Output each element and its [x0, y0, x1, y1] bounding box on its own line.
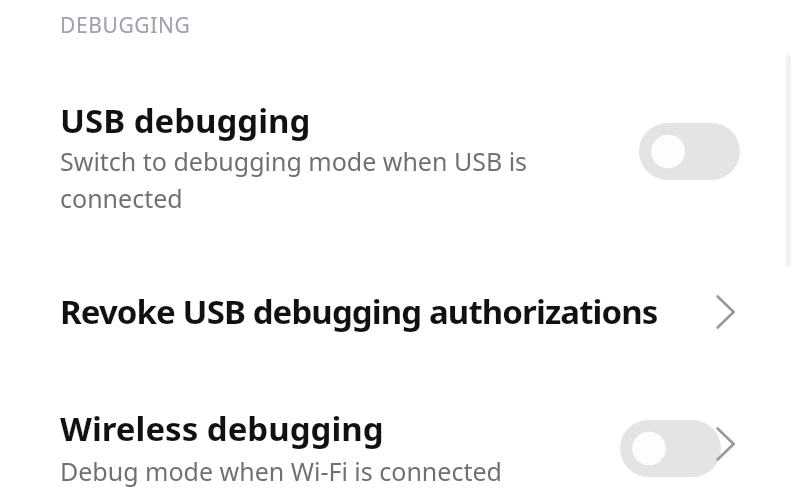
staticText: connected — [60, 181, 183, 215]
button[interactable]: Toggle off — [639, 123, 740, 180]
staticText: Wireless debugging — [60, 406, 384, 451]
staticText: Debug mode when Wi-Fi is connected — [60, 454, 502, 488]
button[interactable]: Open — [712, 422, 746, 466]
staticText: DEBUGGING — [60, 11, 191, 40]
staticText: Revoke USB debugging authorizations — [60, 289, 658, 334]
button[interactable]: Revoke USB debugging authorizations — [0, 272, 800, 354]
button[interactable]: Open — [712, 290, 746, 334]
button[interactable]: Toggle off — [620, 420, 721, 477]
button[interactable]: USB debugging — [0, 86, 800, 231]
staticText: USB debugging — [60, 98, 311, 143]
button[interactable]: Wireless debugging — [0, 398, 800, 500]
staticText: Switch to debugging mode when USB is — [60, 144, 528, 178]
